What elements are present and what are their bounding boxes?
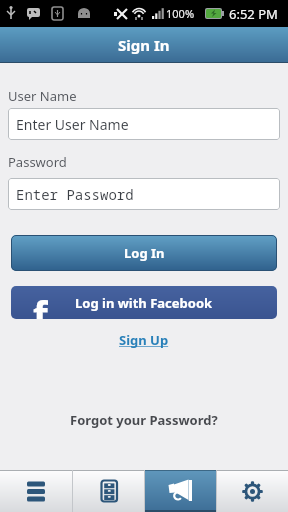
staticText: 6:52 PM [229,5,278,23]
staticText: Log In [124,244,165,262]
staticText: Password [8,153,67,171]
button[interactable] [145,470,216,512]
button[interactable] [217,470,288,512]
staticText: User Name [8,87,77,105]
staticText: 100% [166,6,195,21]
button[interactable]: Enter Password [8,178,280,210]
staticText: Enter Password [16,185,134,204]
staticText: Sign In [118,35,170,55]
button[interactable]: f [11,286,277,319]
staticText: Log in with Facebook [75,294,213,312]
button[interactable]: Log In [11,235,277,271]
staticText: Forgot your Password? [70,411,218,429]
button[interactable] [73,470,144,512]
button[interactable] [0,470,72,512]
button[interactable]: Enter User Name [8,108,280,140]
staticText: Enter User Name [16,115,129,134]
button[interactable]: Sign Up [119,331,169,349]
staticText: f [33,288,48,319]
